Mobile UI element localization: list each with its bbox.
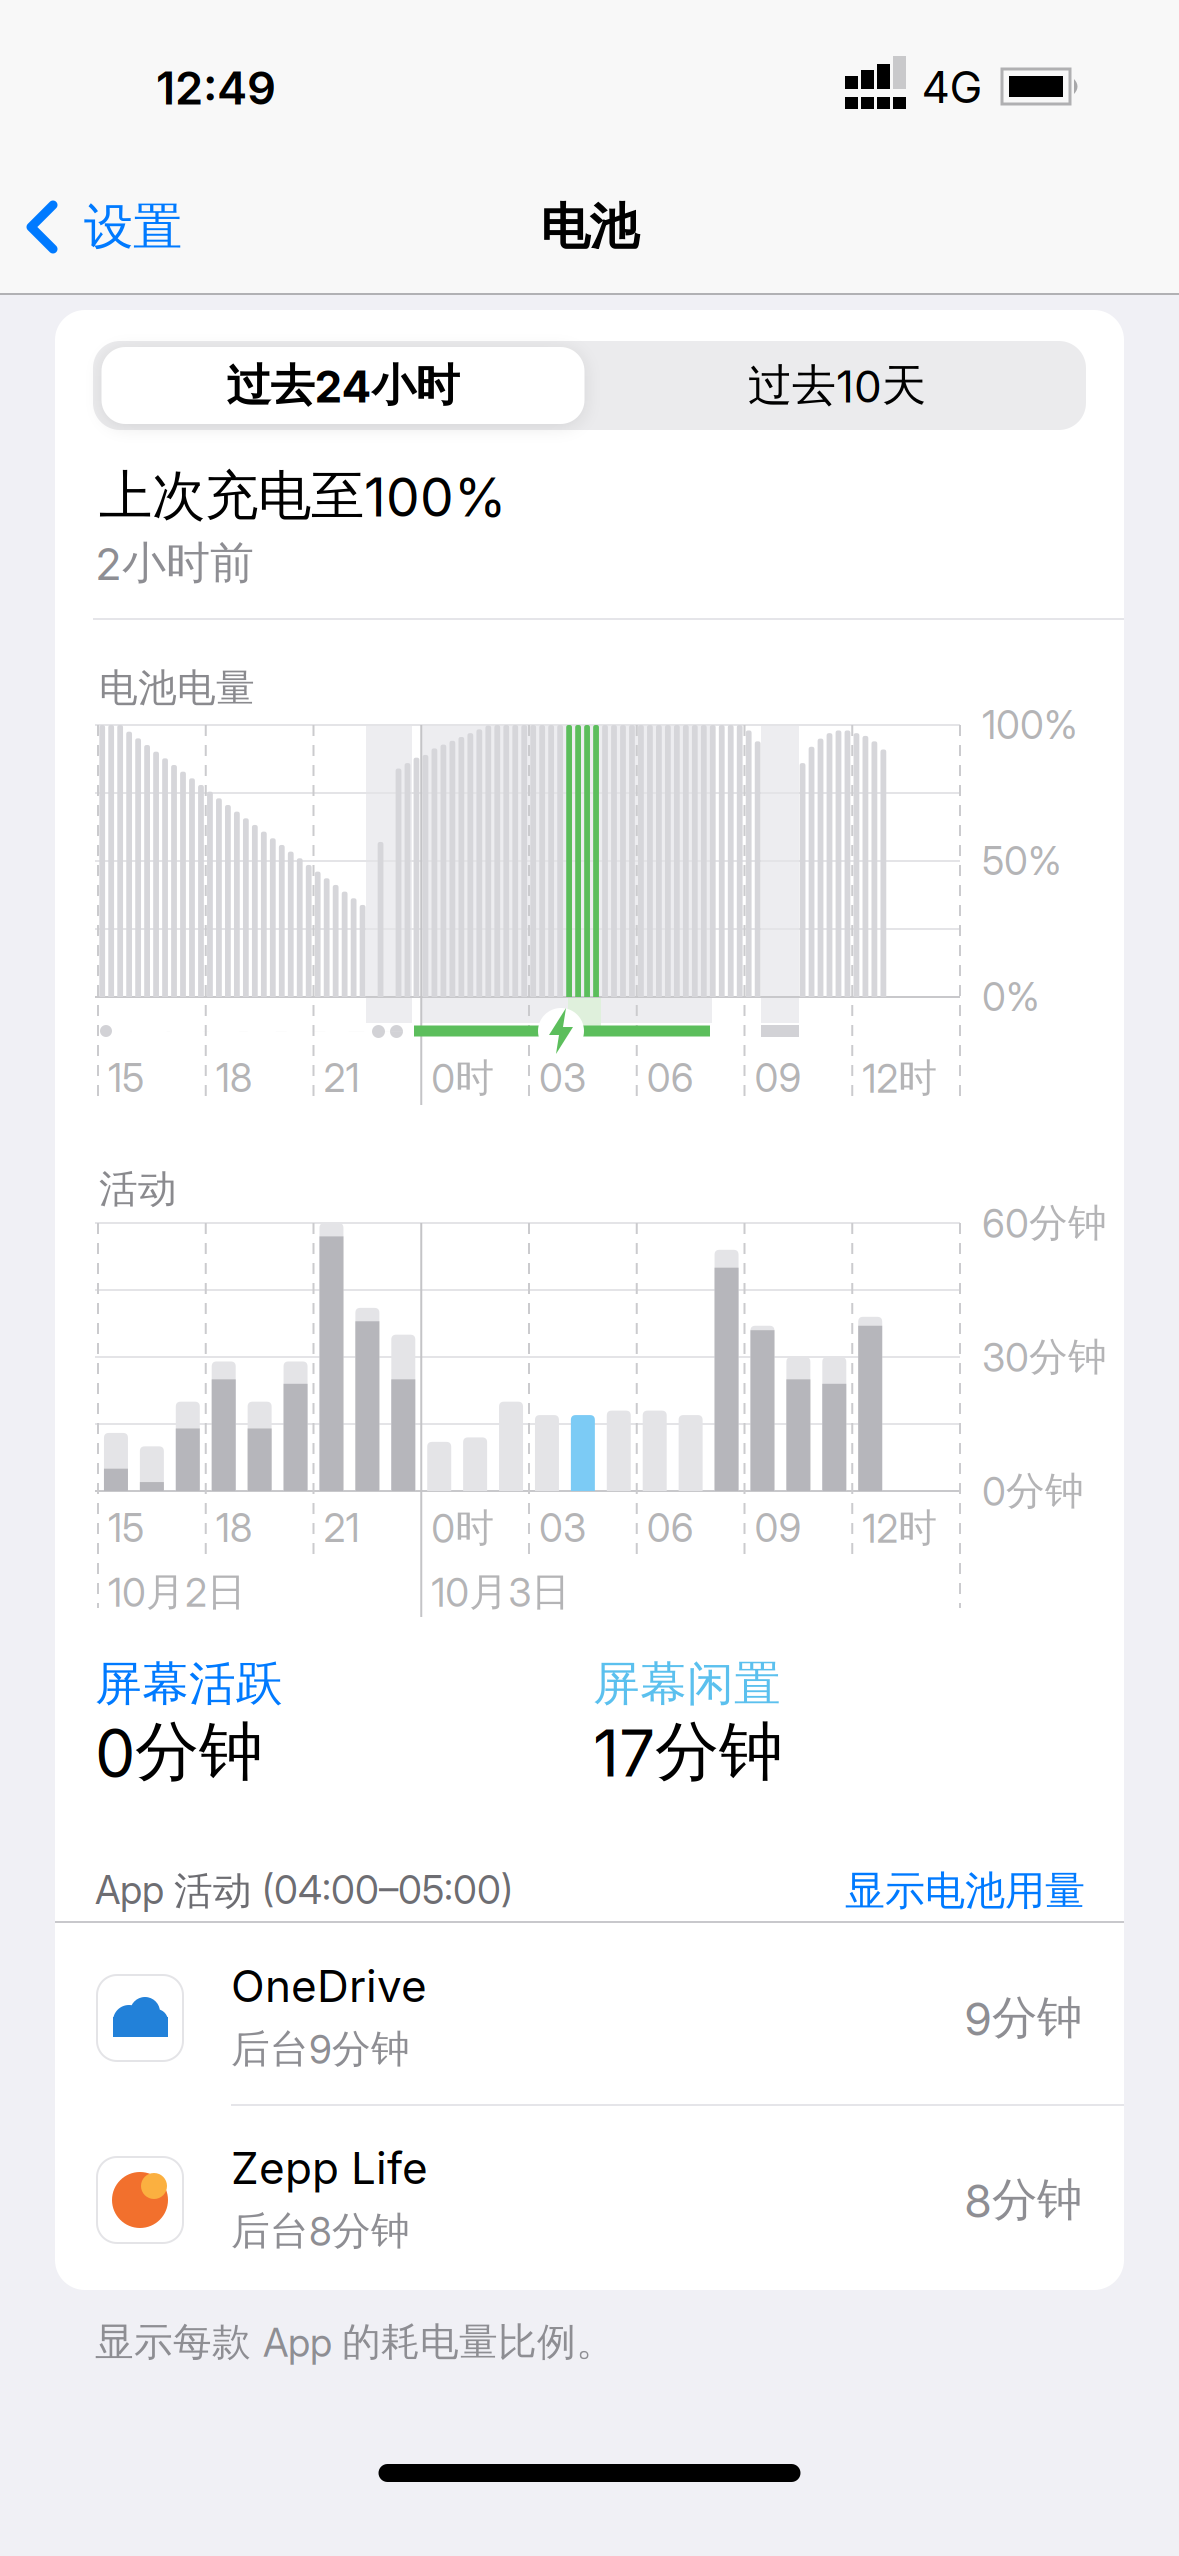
button[interactable]: 过去10天 <box>597 347 1077 424</box>
staticText: 9分钟 <box>964 1990 1082 2046</box>
staticText: 8分钟 <box>964 2172 1082 2228</box>
staticText: 0% <box>982 974 1040 1020</box>
staticText: 50% <box>982 838 1062 884</box>
staticText: 4G <box>921 61 982 113</box>
staticText: 屏幕闲置 <box>593 1655 781 1713</box>
staticText: 上次充电至100% <box>99 463 506 529</box>
staticText: 活动 <box>99 1165 177 1213</box>
staticText: 18 <box>216 1505 253 1551</box>
staticText: 电池 <box>540 197 638 257</box>
staticText: 0分钟 <box>95 1713 263 1791</box>
staticText: OneDrive <box>231 1960 427 2012</box>
button[interactable]: 返回设置 <box>27 182 257 272</box>
staticText: 15 <box>108 1505 144 1551</box>
staticText: 0时 <box>431 1504 494 1552</box>
staticText: 100% <box>982 702 1078 748</box>
staticText: 屏幕活跃 <box>95 1655 283 1713</box>
staticText: 09 <box>754 1505 801 1551</box>
staticText: 12时 <box>862 1054 937 1102</box>
staticText: 电池电量 <box>99 664 255 712</box>
button[interactable]: 显示电池用量 <box>725 1851 1085 1931</box>
staticText: 15 <box>108 1055 144 1101</box>
staticText: App 活动 (04:00–05:00) <box>95 1867 513 1915</box>
staticText: 06 <box>647 1055 694 1101</box>
staticText: 显示电池用量 <box>845 1866 1085 1915</box>
staticText: 60分钟 <box>982 1199 1107 1247</box>
staticText: 21 <box>323 1505 359 1551</box>
staticText: 显示每款 App 的耗电量比例。 <box>95 2318 615 2366</box>
staticText: 06 <box>647 1505 694 1551</box>
staticText: Zepp Life <box>231 2142 428 2194</box>
staticText: 12时 <box>862 1504 937 1552</box>
staticText: 0分钟 <box>982 1467 1084 1515</box>
button[interactable]: OneDrive <box>55 1952 1124 2084</box>
staticText: 03 <box>539 1055 586 1101</box>
button[interactable]: 过去24小时 <box>101 347 584 424</box>
button[interactable]: Zepp Life <box>55 2134 1124 2266</box>
staticText: 设置 <box>84 197 182 257</box>
staticText: 09 <box>754 1055 801 1101</box>
staticText: 后台8分钟 <box>231 2207 410 2255</box>
staticText: 03 <box>539 1505 586 1551</box>
staticText: 18 <box>216 1055 253 1101</box>
staticText: 17分钟 <box>593 1713 783 1791</box>
staticText: 21 <box>323 1055 359 1101</box>
staticText: 0时 <box>431 1054 494 1102</box>
staticText: 12:49 <box>156 61 276 115</box>
staticText: 过去24小时 <box>226 358 459 412</box>
staticText: 2小时前 <box>95 536 254 590</box>
staticText: 10月3日 <box>431 1568 570 1616</box>
staticText: 10月2日 <box>108 1568 246 1616</box>
staticText: 过去10天 <box>748 358 926 412</box>
staticText: 30分钟 <box>982 1333 1107 1381</box>
staticText: 后台9分钟 <box>231 2025 410 2073</box>
